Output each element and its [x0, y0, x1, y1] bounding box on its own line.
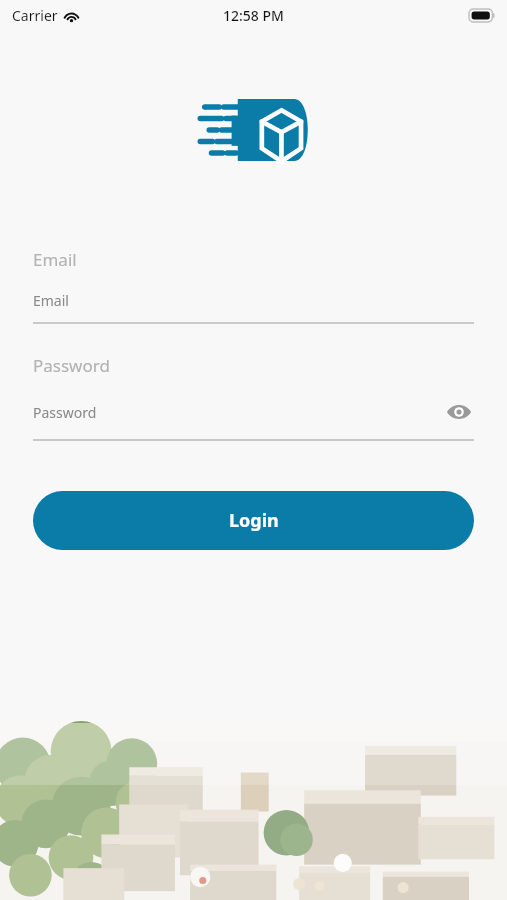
button[interactable]: Email	[33, 248, 474, 324]
staticText: Carrier	[12, 6, 58, 25]
staticText: Email	[33, 248, 77, 271]
button[interactable]: Password	[33, 354, 474, 441]
staticText: Password	[33, 354, 110, 377]
button[interactable]: Show password	[444, 397, 474, 427]
staticText: 12:58 PM	[223, 6, 284, 25]
button[interactable]: Login	[33, 491, 474, 550]
staticText: Login	[229, 508, 279, 533]
staticText: Password	[33, 403, 444, 422]
staticText: Email	[33, 291, 474, 310]
